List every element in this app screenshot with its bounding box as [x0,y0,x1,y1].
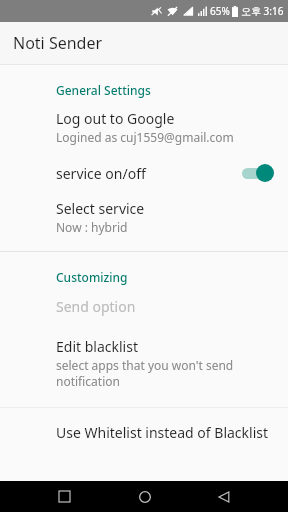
staticText: Edit blacklist [56,337,138,356]
staticText: Customizing [56,269,128,285]
staticText: Logined as cuj1559@gmail.com [56,129,234,145]
staticText: Now : hybrid [56,219,128,235]
button[interactable]: Back [208,481,239,512]
button[interactable]: Send option [0,297,288,316]
staticText: Use Whitelist instead of Blacklist [56,423,269,442]
staticText: service on/off [56,164,240,183]
staticText: Select service [56,199,145,218]
button[interactable]: Log out to Google [0,109,288,145]
staticText: Log out to Google [56,109,175,128]
staticText: 오후 3:16 [241,4,284,18]
staticText: Noti Sender [13,32,103,54]
staticText: Send option [56,297,136,316]
staticText: select apps that you won't send notifica… [56,357,272,389]
button[interactable]: Edit blacklist [0,337,288,389]
button[interactable]: Recent apps [49,481,80,512]
button[interactable]: Select service [0,199,288,235]
staticText: 65% [210,4,230,18]
button[interactable]: service on/off [0,163,288,183]
button[interactable]: Use Whitelist instead of Blacklist [0,423,288,442]
staticText: General Settings [56,82,151,98]
button[interactable]: Home [129,481,160,512]
